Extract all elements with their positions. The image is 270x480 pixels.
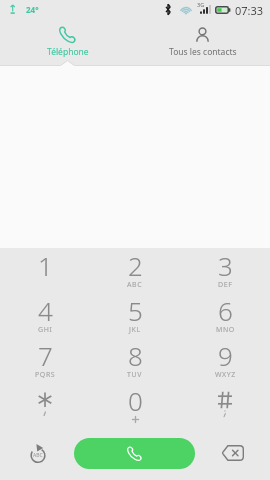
staticText: 07:33	[235, 3, 264, 18]
staticText: 2	[128, 248, 143, 283]
staticText: 7	[38, 338, 53, 373]
staticText: 8	[128, 338, 143, 373]
staticText: 3	[218, 248, 233, 283]
staticText: JKL	[129, 325, 141, 335]
staticText: 3G	[197, 1, 205, 8]
staticText: 6	[218, 293, 233, 328]
button[interactable]: 2	[90, 248, 180, 293]
button[interactable]: 9	[180, 338, 270, 383]
staticText: Tous les contacts	[169, 46, 237, 58]
staticText: ABC	[33, 452, 43, 459]
button[interactable]: 0	[90, 383, 180, 428]
staticText: 5	[128, 293, 143, 328]
staticText: 9	[218, 338, 233, 373]
button[interactable]: Tous les contacts	[135, 18, 270, 66]
staticText: TUV	[127, 370, 143, 380]
button[interactable]: 8	[90, 338, 180, 383]
button[interactable]: Téléphone	[0, 18, 135, 66]
staticText: Téléphone	[47, 46, 89, 58]
staticText: PQRS	[35, 370, 56, 380]
button[interactable]	[0, 383, 90, 428]
button[interactable]: Call	[74, 438, 195, 469]
staticText: WXYZ	[215, 370, 236, 380]
staticText: 4	[38, 293, 53, 328]
staticText: 24°	[26, 4, 39, 15]
button[interactable]: Backspace	[195, 431, 270, 475]
button[interactable]: 5	[90, 293, 180, 338]
staticText: GHI	[38, 325, 53, 335]
staticText: 1	[38, 248, 53, 283]
button[interactable]: 7	[0, 338, 90, 383]
staticText: MNO	[216, 325, 235, 335]
button[interactable]: 4	[0, 293, 90, 338]
staticText: ABC	[127, 280, 143, 290]
button[interactable]: 3	[180, 248, 270, 293]
button[interactable]	[180, 383, 270, 428]
button[interactable]: 6	[180, 293, 270, 338]
staticText: 0	[128, 383, 143, 418]
staticText: DEF	[218, 280, 233, 290]
button[interactable]: 1	[0, 248, 90, 293]
button[interactable]: Switch to ABC keyboard	[0, 431, 74, 475]
